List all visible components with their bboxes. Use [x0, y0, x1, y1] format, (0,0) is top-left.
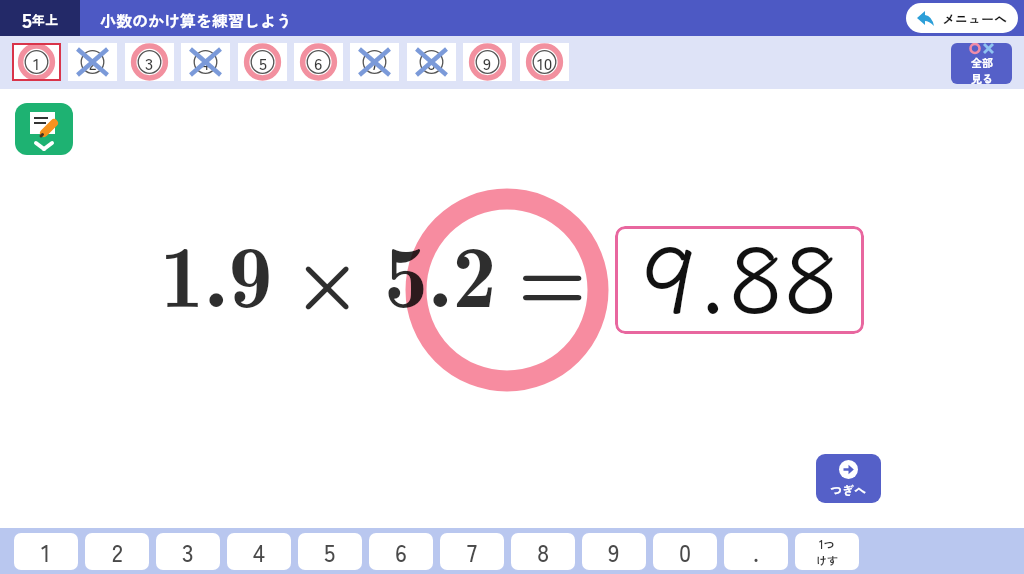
staticText: 4	[253, 534, 265, 569]
staticText: 9	[608, 534, 620, 569]
staticText: 7	[371, 50, 379, 75]
button[interactable]	[15, 103, 73, 155]
staticText: 10	[537, 50, 553, 75]
staticText: =	[518, 210, 587, 336]
button[interactable]: 5	[238, 43, 287, 81]
button[interactable]: 9.88	[615, 226, 864, 334]
staticText: 小数のかけ算を練習しよう	[100, 8, 293, 31]
button[interactable]: メニューへ	[906, 3, 1018, 33]
staticText: 7	[467, 534, 477, 569]
staticText: 6	[314, 50, 323, 75]
button[interactable]: 6	[369, 533, 433, 570]
button[interactable]: 5	[298, 533, 362, 570]
staticText: 3	[182, 534, 194, 569]
staticText: 4	[201, 50, 210, 75]
button[interactable]: 8	[511, 533, 575, 570]
staticText: 年上	[32, 10, 59, 29]
button[interactable]: 2	[85, 533, 149, 570]
staticText: 5	[22, 4, 32, 34]
button[interactable]: .	[724, 533, 788, 570]
button[interactable]: 2	[68, 43, 117, 81]
staticText: 1.9	[160, 207, 273, 333]
staticText: ×	[293, 210, 362, 336]
button[interactable]: 0	[653, 533, 717, 570]
button[interactable]: 3	[156, 533, 220, 570]
staticText: 見る	[971, 70, 993, 84]
staticText: 8	[427, 50, 436, 75]
staticText: 2	[89, 50, 97, 75]
button[interactable]: 1	[12, 43, 61, 81]
staticText: つぎへ	[830, 481, 867, 498]
staticText: 5.2	[384, 207, 497, 333]
staticText: メニューへ	[942, 9, 1008, 28]
button[interactable]: 5	[0, 0, 80, 37]
staticText: 8	[537, 534, 550, 569]
button[interactable]: 全部	[951, 43, 1012, 84]
staticText: 1つ	[819, 536, 835, 552]
button[interactable]: 9	[582, 533, 646, 570]
staticText: けす	[816, 552, 838, 568]
staticText: 5	[324, 534, 336, 569]
staticText: 9.88	[641, 226, 839, 314]
staticText: 5	[259, 50, 267, 75]
button[interactable]: 9	[463, 43, 512, 81]
staticText: 2	[112, 534, 123, 569]
staticText: 9	[483, 50, 492, 75]
staticText: 6	[395, 534, 407, 569]
button[interactable]: 4	[181, 43, 230, 81]
staticText: .	[753, 534, 760, 569]
button[interactable]: 3	[125, 43, 174, 81]
button[interactable]: 7	[440, 533, 504, 570]
button[interactable]: つぎへ	[816, 454, 881, 503]
staticText: 3	[145, 50, 154, 75]
button[interactable]: 6	[294, 43, 343, 81]
button[interactable]: 1つ	[795, 533, 859, 570]
staticText: 1	[41, 534, 51, 569]
button[interactable]: 10	[520, 43, 569, 81]
button[interactable]: 1	[14, 533, 78, 570]
button[interactable]: 4	[227, 533, 291, 570]
staticText: 全部	[971, 54, 993, 70]
button[interactable]: 7	[350, 43, 399, 81]
staticText: 0	[679, 534, 692, 569]
staticText: 1	[33, 50, 40, 75]
button[interactable]: 8	[407, 43, 456, 81]
